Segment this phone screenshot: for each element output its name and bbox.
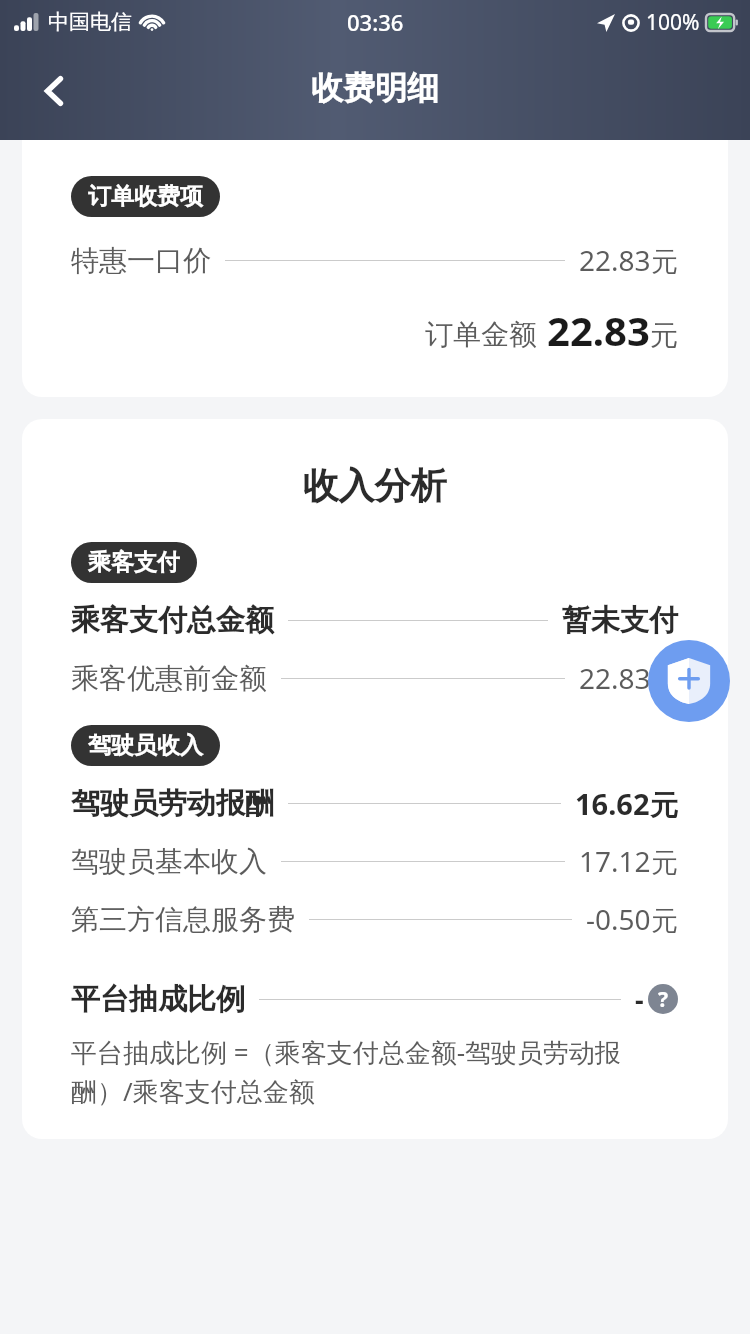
staticText: 17.12 [579, 842, 651, 880]
staticText: 22.83 [547, 303, 650, 357]
button[interactable]: 第三方信息服务费 [71, 890, 678, 948]
staticText: 乘客支付总金额 [71, 602, 274, 639]
staticText: 元 [651, 245, 678, 279]
button[interactable]: 平台抽成比例 [71, 970, 678, 1028]
staticText: 驾驶员劳动报酬 [71, 785, 274, 822]
staticText: 乘客支付 [88, 548, 180, 577]
staticText: 元 [650, 788, 678, 823]
staticText: -0.50 [586, 900, 651, 938]
button[interactable]: Help [648, 984, 678, 1014]
staticText: 03:36 [347, 7, 404, 37]
staticText: 订单金额 [425, 317, 537, 352]
staticText: 第三方信息服务费 [71, 902, 295, 937]
button[interactable]: 驾驶员基本收入 [71, 832, 678, 890]
staticText: 收入分析 [71, 463, 678, 508]
staticText: 100% [646, 8, 700, 37]
staticText: 16.62 [575, 784, 650, 823]
staticText: 驾驶员基本收入 [71, 844, 267, 879]
button[interactable]: 乘客支付总金额 [71, 591, 678, 649]
button[interactable]: Add insurance [648, 640, 730, 722]
button[interactable]: 特惠一口价 [71, 231, 678, 289]
staticText: 平台抽成比例 =（乘客支付总金额-驾驶员劳动报酬）/乘客支付总金额 [71, 1034, 678, 1109]
staticText: 驾驶员收入 [88, 731, 203, 760]
staticText: 元 [650, 318, 678, 353]
staticText: 收费明细 [311, 68, 439, 108]
staticText: 乘客优惠前金额 [71, 661, 267, 696]
staticText: 特惠一口价 [71, 243, 211, 278]
staticText: 元 [651, 904, 678, 938]
staticText: 元 [651, 846, 678, 880]
staticText: 元 [651, 663, 678, 697]
staticText: 平台抽成比例 [71, 981, 245, 1018]
staticText: - [635, 981, 644, 1018]
staticText: 22.83 [579, 241, 651, 279]
staticText: 22.83 [579, 659, 651, 697]
button[interactable]: Back [22, 58, 88, 124]
staticText: ? [658, 985, 669, 1014]
staticText: 订单收费项 [88, 182, 203, 211]
staticText: 中国电信 [48, 9, 132, 35]
staticText: 暂未支付 [562, 602, 678, 639]
button[interactable]: 乘客优惠前金额 [71, 649, 678, 707]
button[interactable]: 驾驶员劳动报酬 [71, 774, 678, 832]
